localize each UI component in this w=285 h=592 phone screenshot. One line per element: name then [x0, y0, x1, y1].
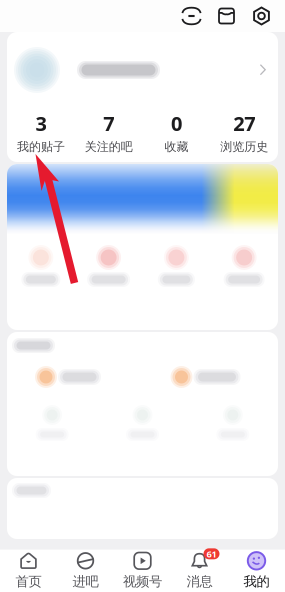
button[interactable] — [97, 399, 188, 447]
button[interactable]: 3 — [7, 108, 75, 158]
staticText: 浏览历史 — [220, 139, 268, 154]
button[interactable]: 27 — [210, 108, 278, 158]
staticText: 27 — [233, 110, 255, 136]
button[interactable]: 进吧 — [57, 549, 114, 591]
button[interactable] — [7, 399, 97, 447]
button[interactable]: 视频号 — [114, 549, 171, 591]
button[interactable]: Scan — [178, 2, 205, 29]
button[interactable]: 0 — [142, 108, 210, 158]
staticText: 收藏 — [164, 139, 188, 154]
button[interactable]: 我的 — [228, 549, 285, 591]
button[interactable]: Archive — [213, 2, 240, 29]
staticText: 关注的吧 — [85, 139, 133, 154]
staticText: 61 — [206, 548, 216, 560]
button[interactable] — [142, 363, 278, 391]
button[interactable] — [7, 234, 75, 298]
staticText: 我的 — [243, 573, 269, 590]
button[interactable] — [75, 234, 143, 298]
staticText: 3 — [35, 110, 46, 136]
button[interactable] — [142, 234, 210, 298]
staticText: 我的贴子 — [17, 139, 65, 154]
staticText: 视频号 — [123, 573, 162, 590]
staticText: 消息 — [186, 573, 212, 590]
button[interactable]: 61 — [171, 549, 228, 591]
staticText: 进吧 — [72, 573, 98, 590]
button[interactable] — [210, 234, 278, 298]
button[interactable] — [188, 399, 278, 447]
staticText: 0 — [171, 110, 182, 136]
staticText: 首页 — [15, 573, 41, 590]
button[interactable] — [7, 363, 142, 391]
button[interactable]: Settings — [248, 2, 275, 29]
button[interactable]: 首页 — [0, 549, 57, 591]
button[interactable]: 7 — [75, 108, 143, 158]
staticText: 7 — [103, 110, 114, 136]
button[interactable] — [7, 32, 278, 108]
